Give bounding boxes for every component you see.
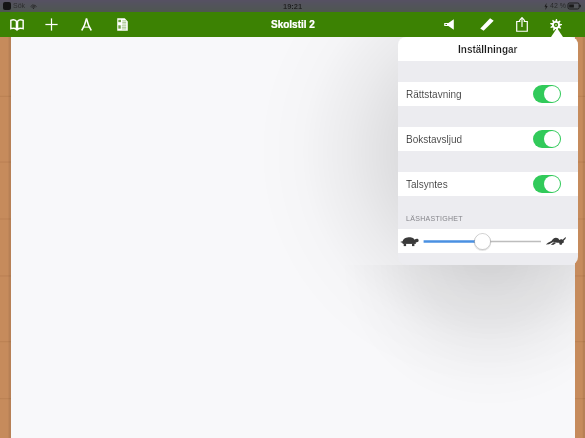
button[interactable]: On [533,85,561,103]
button[interactable]: Settings [542,12,570,37]
staticText: LÄSHASTIGHET [406,215,463,223]
button[interactable]: Read aloud [435,12,463,37]
button[interactable]: Documents [108,12,136,37]
staticText: Talsyntes [406,179,448,190]
button[interactable]: On [533,175,561,193]
staticText: Bokstavsljud [406,134,463,145]
staticText: Inställningar [458,44,518,55]
button[interactable]: On [533,130,561,148]
staticText: 19:21 [283,2,303,10]
button[interactable]: Rättstavning [398,82,578,106]
button[interactable]: Text style [72,12,100,37]
button[interactable] [398,229,578,253]
staticText: Rättstavning [406,89,462,100]
staticText: Skolstil 2 [271,19,315,30]
staticText: 42 % [550,2,566,10]
button[interactable]: Talsyntes [398,172,578,196]
button[interactable]: Share [508,12,536,37]
button[interactable]: Edit [473,12,501,37]
button[interactable]: Library [3,12,31,37]
staticText: Sök [13,2,26,10]
button[interactable]: Bokstavsljud [398,127,578,151]
button[interactable]: Add new [37,12,65,37]
